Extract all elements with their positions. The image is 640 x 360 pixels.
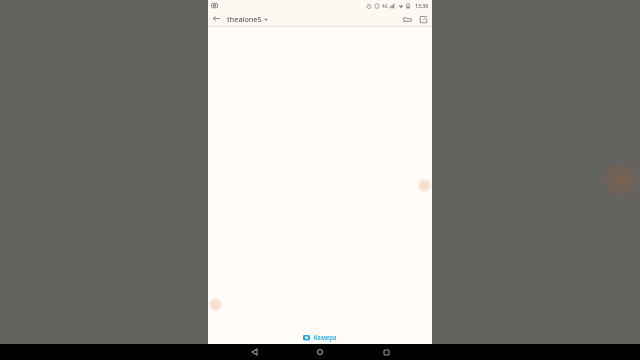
staticText: 4G xyxy=(382,3,388,9)
button[interactable]: Камера xyxy=(300,332,340,342)
button[interactable]: Compose xyxy=(415,11,431,27)
button[interactable]: Back xyxy=(234,344,274,360)
staticText: thealone5 xyxy=(227,14,262,24)
button[interactable]: thealone5 xyxy=(225,12,270,26)
staticText: Камера xyxy=(313,333,337,341)
button[interactable]: Folders xyxy=(399,11,415,27)
button[interactable]: Recent apps xyxy=(366,344,406,360)
staticText: 13:36 xyxy=(415,2,429,9)
button[interactable]: Home xyxy=(300,344,340,360)
button[interactable]: Back xyxy=(208,10,225,27)
